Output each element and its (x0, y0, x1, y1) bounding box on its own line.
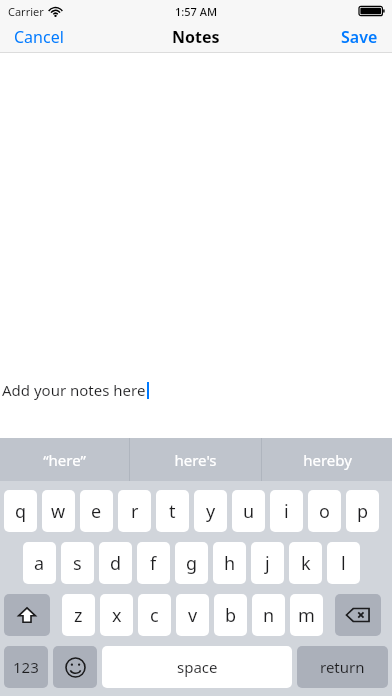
button[interactable]: o (308, 490, 341, 532)
button[interactable]: s (61, 542, 94, 584)
button[interactable]: Emoji (53, 646, 97, 688)
staticText: r (131, 499, 139, 524)
button[interactable]: return (297, 646, 388, 688)
button[interactable]: t (156, 490, 189, 532)
button[interactable]: w (42, 490, 75, 532)
button[interactable]: h (213, 542, 246, 584)
button[interactable]: u (232, 490, 265, 532)
staticText: e (91, 499, 102, 524)
button[interactable]: p (346, 490, 379, 532)
button[interactable]: hereby (262, 438, 392, 481)
button[interactable]: k (289, 542, 322, 584)
button[interactable]: q (4, 490, 37, 532)
button[interactable]: l (327, 542, 360, 584)
button[interactable]: n (252, 594, 285, 636)
staticText: Cancel (14, 26, 64, 48)
staticText: return (320, 657, 365, 677)
staticText: Save (341, 26, 378, 48)
staticText: j (265, 551, 270, 576)
staticText: Notes (172, 26, 220, 48)
staticText: w (51, 499, 66, 524)
staticText: x (112, 603, 122, 628)
button[interactable]: d (99, 542, 132, 584)
staticText: p (357, 499, 369, 524)
button[interactable]: space (102, 646, 292, 688)
button[interactable]: c (138, 594, 171, 636)
staticText: k (301, 551, 311, 576)
staticText: d (110, 551, 122, 576)
staticText: space (177, 657, 218, 677)
staticText: v (188, 603, 198, 628)
button[interactable]: b (214, 594, 247, 636)
staticText: b (225, 603, 237, 628)
button[interactable]: i (270, 490, 303, 532)
button[interactable]: e (80, 490, 113, 532)
staticText: l (341, 551, 346, 576)
button[interactable]: z (62, 594, 95, 636)
staticText: “here” (43, 450, 86, 470)
button[interactable]: j (251, 542, 284, 584)
button[interactable]: 123 (4, 646, 48, 688)
staticText: 123 (13, 657, 39, 677)
staticText: g (186, 551, 198, 576)
staticText: z (74, 603, 83, 628)
button[interactable]: r (118, 490, 151, 532)
button[interactable]: f (137, 542, 170, 584)
button[interactable]: a (23, 542, 56, 584)
button[interactable]: Save (327, 22, 392, 52)
button[interactable]: m (290, 594, 323, 636)
button[interactable]: Backspace (335, 594, 381, 636)
button[interactable]: y (194, 490, 227, 532)
button[interactable]: v (176, 594, 209, 636)
staticText: h (224, 551, 236, 576)
button[interactable]: x (100, 594, 133, 636)
staticText: o (319, 499, 330, 524)
button[interactable]: g (175, 542, 208, 584)
button[interactable]: Shift (4, 594, 50, 636)
staticText: here's (174, 450, 217, 470)
staticText: u (243, 499, 255, 524)
button[interactable]: Cancel (0, 22, 78, 52)
staticText: s (73, 551, 82, 576)
staticText: 1:57 AM (175, 4, 218, 19)
staticText: n (263, 603, 275, 628)
staticText: t (169, 499, 176, 524)
staticText: c (150, 603, 159, 628)
staticText: f (150, 551, 157, 576)
staticText: i (284, 499, 289, 524)
staticText: a (34, 551, 45, 576)
button[interactable]: here's (130, 438, 261, 481)
staticText: m (298, 603, 315, 628)
staticText: Add your notes here (2, 380, 146, 400)
staticText: Carrier (8, 4, 44, 19)
staticText: y (206, 499, 216, 524)
button[interactable]: “here” (0, 438, 129, 481)
staticText: hereby (303, 450, 352, 470)
staticText: q (15, 499, 27, 524)
